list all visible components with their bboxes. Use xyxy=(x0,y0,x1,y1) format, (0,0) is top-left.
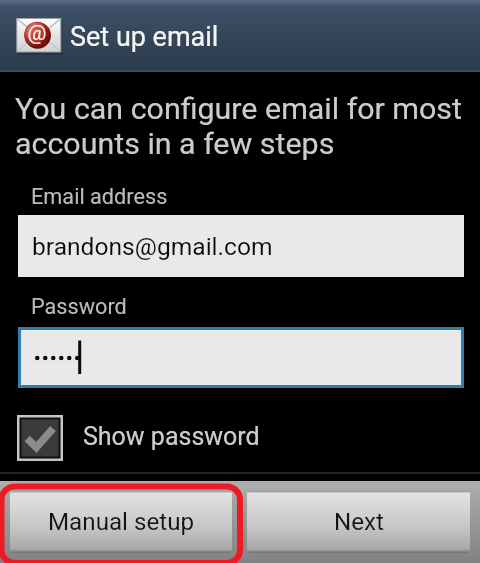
staticText: Manual setup xyxy=(48,508,195,536)
staticText: Set up email xyxy=(70,21,219,53)
staticText: Email address xyxy=(31,184,168,209)
button[interactable]: Manual setup xyxy=(10,491,232,553)
button[interactable] xyxy=(21,330,461,385)
other: Email xyxy=(16,18,61,53)
button[interactable]: Show password xyxy=(0,411,480,465)
button[interactable]: brandons@gmail.com xyxy=(18,215,464,277)
staticText: Password xyxy=(31,294,127,319)
staticText: You can configure email for most account… xyxy=(15,91,467,161)
button[interactable]: Next xyxy=(247,491,470,553)
staticText: Next xyxy=(334,508,384,536)
staticText: Show password xyxy=(83,422,260,451)
staticText: brandons@gmail.com xyxy=(32,232,273,261)
